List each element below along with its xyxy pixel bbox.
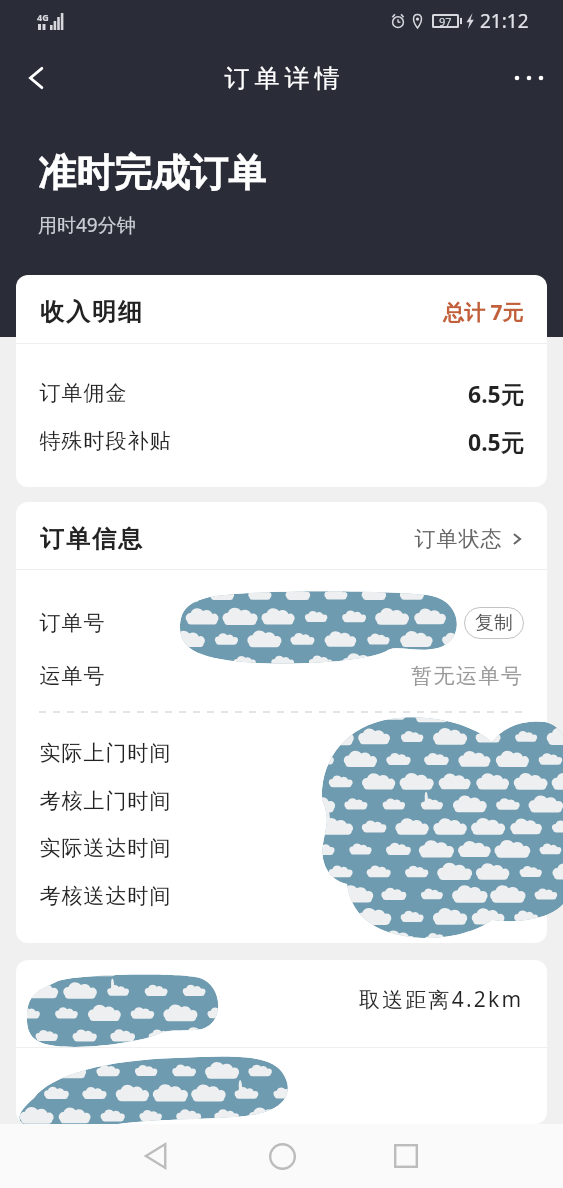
- button[interactable]: Back: [128, 1128, 184, 1184]
- staticText: 特殊时段补贴: [39, 428, 171, 454]
- staticText: 准时完成订单: [38, 149, 266, 197]
- staticText: 运单号: [39, 663, 105, 689]
- staticText: 实际送达时间: [39, 835, 171, 861]
- button[interactable]: Back: [8, 50, 64, 106]
- staticText: 0.5元: [468, 426, 524, 457]
- staticText: 21:12: [480, 8, 529, 34]
- staticText: 订单详情: [222, 63, 342, 94]
- button[interactable]: 复制: [464, 607, 524, 639]
- staticText: 考核上门时间: [39, 788, 171, 814]
- button[interactable]: 订单状态: [414, 526, 524, 552]
- staticText: 暂无运单号: [411, 663, 524, 689]
- staticText: 订单佣金: [39, 380, 127, 406]
- staticText: 订单状态: [414, 526, 502, 552]
- staticText: 97: [439, 14, 452, 28]
- staticText: 取送距离4.2km: [359, 985, 524, 1014]
- button[interactable]: More options: [501, 50, 557, 106]
- staticText: 订单号: [39, 610, 105, 636]
- button[interactable]: Recent apps: [378, 1128, 434, 1184]
- staticText: 考核送达时间: [39, 883, 171, 909]
- staticText: 6.5元: [468, 378, 524, 409]
- staticText: 4G: [37, 11, 49, 23]
- staticText: 收入明细: [39, 297, 143, 327]
- staticText: 用时49分钟: [38, 212, 136, 238]
- staticText: 总计 7元: [443, 298, 524, 327]
- staticText: 订单信息: [39, 524, 143, 554]
- staticText: 复制: [475, 611, 513, 635]
- staticText: 实际上门时间: [39, 740, 171, 766]
- button[interactable]: Home: [254, 1128, 310, 1184]
